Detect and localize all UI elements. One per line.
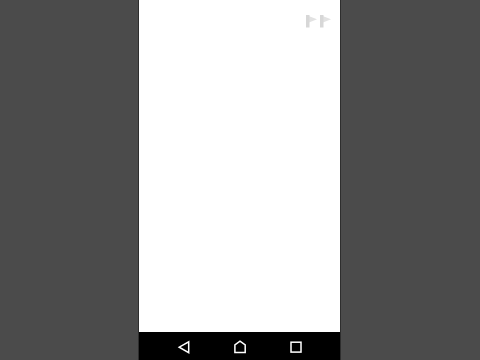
button[interactable] [284,335,308,359]
button[interactable] [228,335,252,359]
button[interactable] [172,335,196,359]
